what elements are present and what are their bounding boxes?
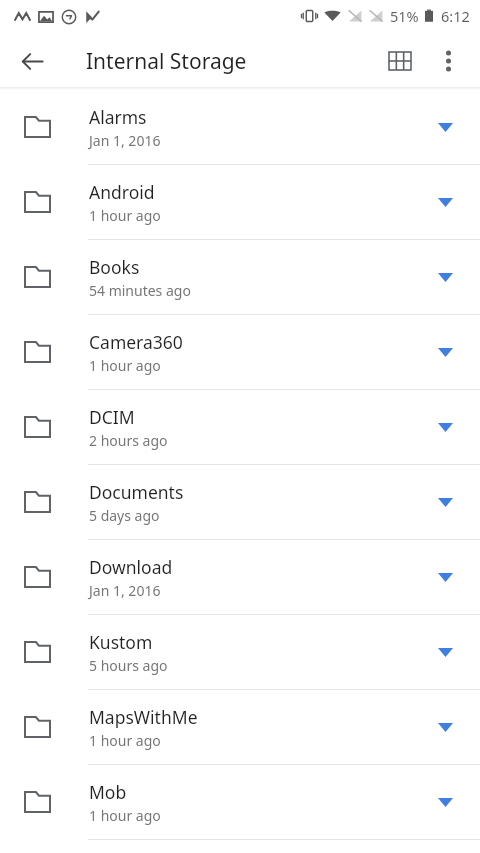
- button[interactable]: Back: [8, 37, 56, 85]
- button[interactable]: Expand: [430, 787, 460, 817]
- button[interactable]: Expand: [430, 637, 460, 667]
- staticText: 1 hour ago: [89, 206, 161, 225]
- button[interactable]: Books: [0, 240, 480, 315]
- staticText: 5 days ago: [89, 506, 160, 525]
- button[interactable]: Documents: [0, 465, 480, 540]
- button[interactable]: Grid view: [376, 37, 424, 85]
- staticText: 1 hour ago: [89, 731, 161, 750]
- button[interactable]: Expand: [430, 562, 460, 592]
- staticText: Alarms: [89, 105, 147, 129]
- button[interactable]: Kustom: [0, 615, 480, 690]
- staticText: 1 hour ago: [89, 806, 161, 825]
- staticText: 6:12: [441, 6, 470, 26]
- button[interactable]: Expand: [430, 187, 460, 217]
- button[interactable]: Alarms: [0, 90, 480, 165]
- button[interactable]: Mob: [0, 765, 480, 840]
- button[interactable]: DCIM: [0, 390, 480, 465]
- button[interactable]: Expand: [430, 112, 460, 142]
- button[interactable]: More options: [424, 37, 472, 85]
- staticText: 2 hours ago: [89, 431, 168, 450]
- button[interactable]: Expand: [430, 337, 460, 367]
- staticText: MapsWithMe: [89, 705, 198, 729]
- staticText: Camera360: [89, 330, 183, 354]
- button[interactable]: Android: [0, 165, 480, 240]
- staticText: Internal Storage: [86, 47, 247, 76]
- staticText: DCIM: [89, 405, 135, 429]
- button[interactable]: Expand: [430, 262, 460, 292]
- button[interactable]: MapsWithMe: [0, 690, 480, 765]
- staticText: Jan 1, 2016: [89, 131, 161, 150]
- staticText: Mob: [89, 780, 127, 804]
- staticText: Kustom: [89, 630, 153, 654]
- button[interactable]: Expand: [430, 712, 460, 742]
- button[interactable]: Camera360: [0, 315, 480, 390]
- staticText: Android: [89, 180, 155, 204]
- staticText: Download: [89, 555, 173, 579]
- staticText: Books: [89, 255, 140, 279]
- staticText: 1 hour ago: [89, 356, 161, 375]
- button[interactable]: Download: [0, 540, 480, 615]
- button[interactable]: Expand: [430, 487, 460, 517]
- staticText: 54 minutes ago: [89, 281, 191, 300]
- button[interactable]: Expand: [430, 412, 460, 442]
- staticText: 51%: [390, 6, 419, 26]
- staticText: Jan 1, 2016: [89, 581, 161, 600]
- staticText: Documents: [89, 480, 184, 504]
- staticText: 5 hours ago: [89, 656, 168, 675]
